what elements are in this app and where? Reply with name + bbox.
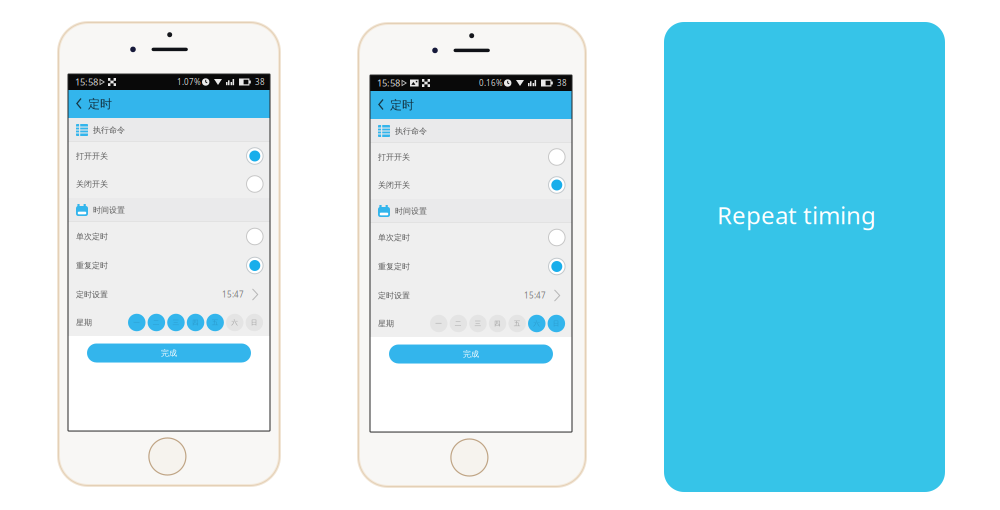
staticText: 15:58 [75, 76, 98, 88]
staticText: 定时 [88, 97, 112, 111]
button[interactable]: 四 [489, 315, 506, 332]
button[interactable]: 一 [128, 314, 145, 331]
staticText: 打开开关 [76, 151, 108, 161]
staticText: 15:47 [222, 289, 244, 300]
staticText: 时间设置 [395, 206, 427, 216]
button[interactable]: 关闭开关 [68, 170, 270, 198]
staticText: 日 [553, 319, 560, 328]
staticText: 星期 [378, 319, 394, 328]
staticText: 重复定时 [378, 262, 410, 271]
button[interactable]: 日 [548, 315, 565, 332]
staticText: 定时 [390, 98, 414, 112]
button[interactable]: 定时设置 [370, 281, 572, 310]
staticText: 重复定时 [76, 261, 108, 270]
button[interactable]: 日 [246, 314, 263, 331]
staticText: 完成 [161, 348, 177, 358]
button[interactable]: 四 [187, 314, 204, 331]
staticText: 二 [153, 318, 160, 327]
staticText: Repeat timing [717, 199, 876, 231]
button[interactable]: 二 [148, 314, 165, 331]
button[interactable]: 关闭开关 [370, 171, 572, 199]
staticText: 1.07% [177, 77, 201, 87]
button[interactable]: 打开开关 [68, 142, 270, 170]
button[interactable]: 重复定时 [370, 252, 572, 281]
staticText: 五 [514, 319, 521, 328]
staticText: 定时设置 [378, 291, 410, 300]
button[interactable]: 六 [528, 315, 545, 332]
button[interactable]: 六 [226, 314, 243, 331]
button[interactable]: 单次定时 [68, 222, 270, 251]
staticText: 一 [435, 319, 442, 328]
staticText: 三 [474, 319, 481, 328]
button[interactable]: 单次定时 [370, 223, 572, 252]
staticText: 四 [192, 318, 199, 327]
button[interactable]: 定时设置 [68, 280, 270, 309]
staticText: 完成 [463, 349, 479, 359]
button[interactable]: 重复定时 [68, 251, 270, 280]
staticText: 二 [455, 319, 462, 328]
staticText: 一 [133, 318, 140, 327]
staticText: 日 [251, 318, 258, 327]
button[interactable]: Back [68, 90, 88, 117]
staticText: 0.16% [479, 78, 503, 88]
staticText: 单次定时 [378, 233, 410, 242]
button[interactable]: 二 [450, 315, 467, 332]
staticText: 星期 [76, 318, 92, 327]
button[interactable]: 三 [167, 314, 185, 331]
staticText: 关闭开关 [378, 180, 410, 190]
staticText: 五 [212, 318, 219, 327]
staticText: 六 [231, 318, 238, 327]
staticText: 38 [557, 78, 567, 88]
button[interactable]: 完成 [389, 344, 553, 363]
staticText: 单次定时 [76, 232, 108, 241]
staticText: 打开开关 [378, 152, 410, 162]
button[interactable]: 三 [469, 315, 487, 332]
button[interactable]: 五 [206, 314, 224, 331]
staticText: 六 [533, 319, 540, 328]
staticText: 三 [172, 318, 179, 327]
staticText: 四 [494, 319, 501, 328]
staticText: 定时设置 [76, 290, 108, 299]
staticText: 关闭开关 [76, 179, 108, 189]
staticText: 执行命令 [93, 125, 125, 135]
button[interactable]: 一 [430, 315, 447, 332]
button[interactable]: 五 [508, 315, 526, 332]
button[interactable]: 完成 [87, 343, 251, 362]
staticText: 38 [255, 77, 265, 87]
staticText: 15:47 [524, 290, 546, 301]
staticText: 15:58 [377, 77, 400, 89]
staticText: 时间设置 [93, 205, 125, 215]
staticText: 执行命令 [395, 126, 427, 136]
button[interactable]: Back [370, 91, 390, 118]
button[interactable]: 打开开关 [370, 143, 572, 171]
